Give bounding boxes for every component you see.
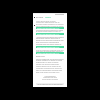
staticText: pteur sint occaecat cupidatat non proide…	[36, 55, 49, 57]
button[interactable]	[36, 83, 64, 85]
staticText: Lorem ipsum dolor sit amet consectetur a…	[36, 20, 64, 27]
staticText: ip ex ea commodo consequat duis aute iru…	[36, 49, 64, 52]
staticText: Section heading goes here now	[37, 33, 60, 35]
button[interactable]: Section heading goes here now	[36, 46, 64, 48]
button[interactable]: Section heading goes here now	[36, 33, 64, 35]
button[interactable]: Browse	[36, 16, 44, 19]
button[interactable]: Topics	[45, 16, 52, 19]
staticText: id est laborum sed ut perspiciatis unde …	[36, 83, 64, 85]
staticText: o eiusmod tempor incididunt ut labore et…	[36, 29, 64, 32]
button[interactable]: Section heading goes here now	[36, 52, 64, 54]
staticText: sectetur adipiscing elit sed do eiusmod …	[36, 58, 64, 74]
staticText: Section heading goes here now	[37, 27, 60, 29]
button[interactable]: Section heading goes here now	[36, 27, 64, 29]
staticText: Section heading goes here now	[37, 46, 60, 48]
staticText: Section heading goes here now	[37, 52, 60, 54]
staticText: n reprehenderit voluptate velit esse cil…	[41, 75, 59, 81]
staticText: ut enim ad minim veniam quis nostrud exe…	[36, 36, 64, 46]
